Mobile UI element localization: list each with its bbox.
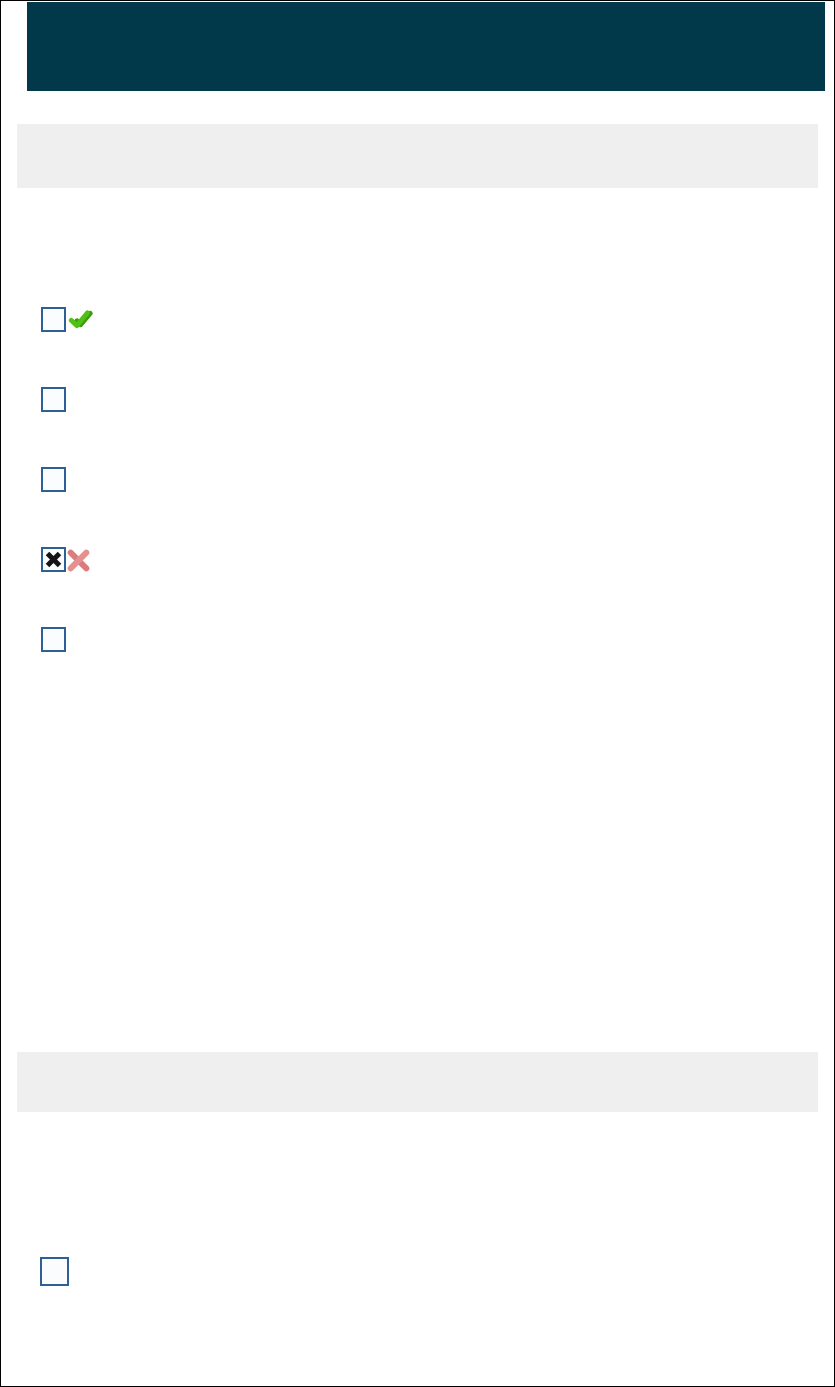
button[interactable]: Confirm [40, 1257, 69, 1286]
button[interactable]: Option 3 [41, 467, 66, 492]
other: Rejected [67, 549, 90, 572]
button[interactable]: Option 4, selected [41, 547, 66, 572]
other: Approved [69, 308, 91, 330]
button[interactable]: Option 1 [41, 307, 66, 332]
button[interactable]: Option 2 [41, 387, 66, 412]
button[interactable]: Option 5 [41, 627, 66, 652]
